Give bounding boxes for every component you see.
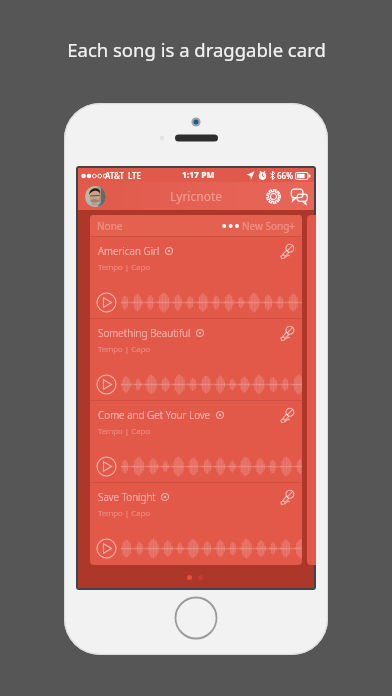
- staticText: Tempo | Capo: [98, 507, 151, 518]
- staticText: New Song+: [242, 219, 296, 233]
- button[interactable]: Profile: [85, 186, 106, 207]
- button[interactable]: Settings: [260, 183, 286, 209]
- staticText: 66%: [277, 170, 293, 181]
- button[interactable]: Play: [96, 456, 117, 477]
- staticText: Lyricnote: [170, 188, 222, 204]
- button[interactable]: Save Tonight: [90, 482, 302, 564]
- button[interactable]: Play: [96, 374, 117, 395]
- button[interactable]: None: [90, 215, 302, 565]
- button[interactable]: Chat: [286, 183, 312, 209]
- staticText: Each song is a draggable card: [67, 37, 326, 62]
- staticText: Save Tonight: [98, 490, 156, 504]
- staticText: Tempo | Capo: [98, 343, 151, 354]
- staticText: None: [97, 219, 123, 233]
- button[interactable]: Record: [280, 244, 295, 259]
- button[interactable]: Record: [280, 490, 295, 505]
- staticText: Tempo | Capo: [98, 261, 151, 272]
- staticText: Something Beautiful: [98, 326, 191, 340]
- button[interactable]: Record: [280, 408, 295, 423]
- staticText: American Girl: [98, 244, 160, 258]
- button[interactable]: Play: [96, 292, 117, 313]
- staticText: Tempo | Capo: [98, 425, 151, 436]
- button[interactable]: Play: [96, 538, 117, 559]
- button[interactable]: Something Beautiful: [90, 318, 302, 400]
- staticText: Come and Get Your Love: [98, 408, 211, 422]
- button[interactable]: None: [97, 215, 296, 236]
- button[interactable]: Come and Get Your Love: [90, 400, 302, 482]
- staticText: 1:17 PM: [182, 169, 215, 181]
- staticText: AT&T: [105, 170, 124, 181]
- staticText: LTE: [128, 170, 142, 181]
- button[interactable]: Record: [280, 326, 295, 341]
- button[interactable]: American Girl: [90, 236, 302, 318]
